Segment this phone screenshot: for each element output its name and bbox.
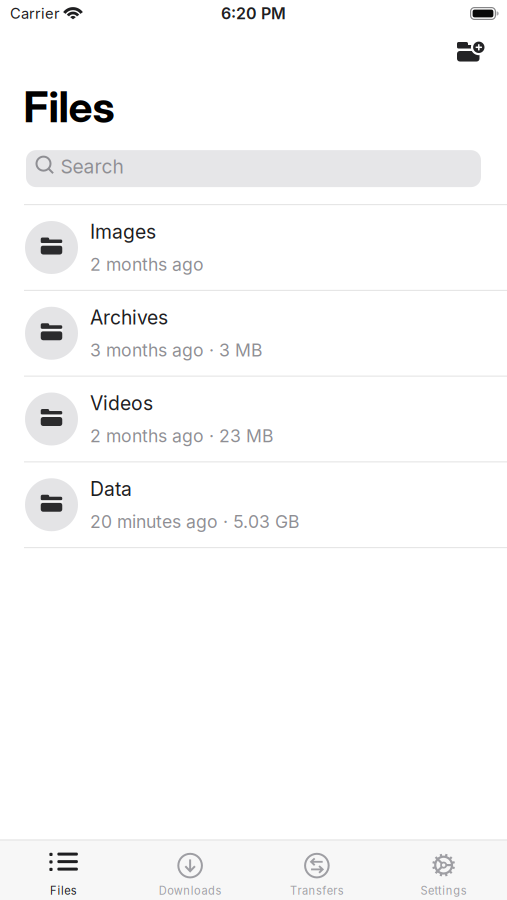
staticText: Videos	[90, 391, 153, 415]
staticText: 2 months ago · 23 MB	[90, 425, 274, 447]
staticText: Settings	[420, 884, 467, 897]
staticText: Downloads	[159, 884, 221, 897]
staticText: 20 minutes ago · 5.03 GB	[90, 511, 300, 532]
staticText: Carrier	[10, 5, 60, 22]
staticText: 6:20 PM	[221, 4, 286, 23]
staticText: Images	[90, 220, 156, 243]
button[interactable]: New Folder	[455, 25, 489, 67]
button[interactable]: Search	[26, 150, 481, 187]
staticText: Transfers	[290, 884, 344, 897]
staticText: Search	[60, 155, 123, 178]
button[interactable]: Settings	[380, 849, 507, 897]
staticText: 2 months ago	[90, 254, 204, 275]
button[interactable]: Data	[0, 462, 507, 547]
button[interactable]: Videos	[0, 377, 507, 461]
staticText: Archives	[90, 306, 168, 329]
staticText: Files	[23, 81, 114, 133]
button[interactable]: Transfers	[253, 849, 380, 897]
button[interactable]: Files	[0, 849, 127, 897]
staticText: Data	[90, 477, 132, 501]
button[interactable]: Images	[0, 205, 507, 290]
button[interactable]: Downloads	[127, 849, 254, 897]
staticText: Files	[50, 884, 77, 897]
button[interactable]: Archives	[0, 291, 507, 376]
staticText: 3 months ago · 3 MB	[90, 339, 263, 361]
